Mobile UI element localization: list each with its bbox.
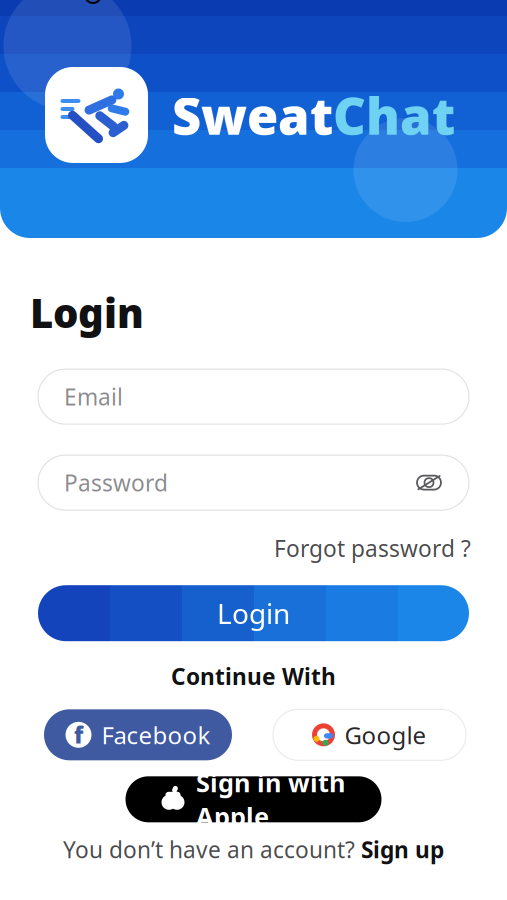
staticText: Email <box>64 382 123 412</box>
button[interactable]: f <box>44 709 232 760</box>
staticText: Sweat <box>172 81 333 149</box>
button[interactable]: Sign in with Apple <box>125 776 381 822</box>
staticText: f <box>74 720 83 750</box>
staticText: Login <box>217 595 290 632</box>
staticText: Google <box>344 719 426 751</box>
staticText: You don’t have an account? <box>63 834 355 864</box>
button[interactable]: Email <box>38 369 469 424</box>
staticText: Continue With <box>171 661 336 691</box>
button[interactable]: Forgot password ? <box>274 533 471 563</box>
button[interactable]: Login <box>38 585 469 641</box>
button[interactable]: Password <box>38 455 469 510</box>
staticText: Sign in with Apple <box>196 766 345 833</box>
staticText: Carrier <box>14 0 78 5</box>
staticText: Forgot password ? <box>274 533 471 563</box>
staticText: Password <box>64 468 168 498</box>
staticText: Sign up <box>361 834 444 864</box>
staticText: Facebook <box>101 719 210 751</box>
button[interactable]: Google <box>273 709 466 760</box>
staticText: Login <box>30 286 144 339</box>
button[interactable]: You don’t have an account? <box>63 834 444 864</box>
staticText: Chat <box>333 81 455 149</box>
